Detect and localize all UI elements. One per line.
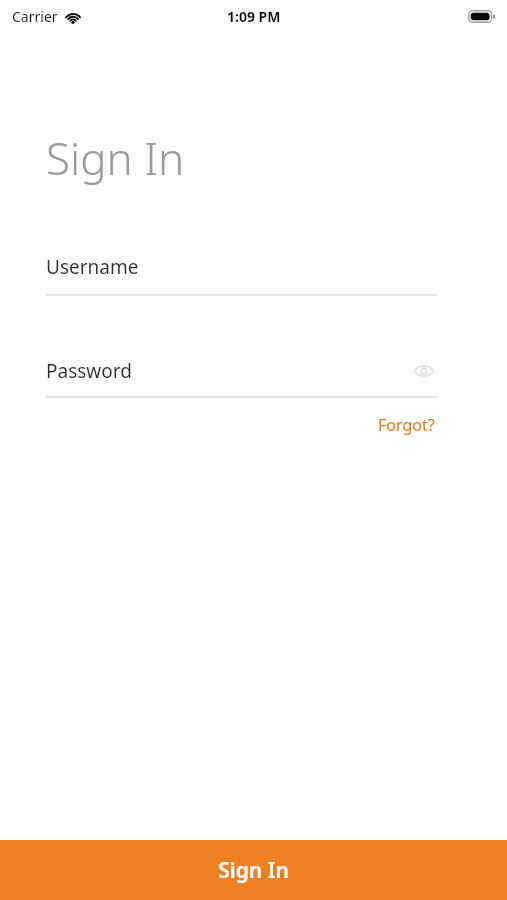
staticText: Carrier <box>12 7 58 26</box>
button[interactable]: Sign In <box>0 840 507 900</box>
staticText: Password <box>46 358 132 384</box>
button[interactable]: Username <box>46 254 437 296</box>
button[interactable]: Password <box>46 358 437 384</box>
staticText: 1:09 PM <box>227 7 281 26</box>
staticText: Username <box>46 254 139 280</box>
staticText: Forgot? <box>378 414 435 436</box>
staticText: Sign In <box>46 128 185 188</box>
button[interactable]: Show password <box>411 358 437 384</box>
staticText: Sign In <box>218 856 289 885</box>
button[interactable]: Forgot? <box>376 410 437 440</box>
